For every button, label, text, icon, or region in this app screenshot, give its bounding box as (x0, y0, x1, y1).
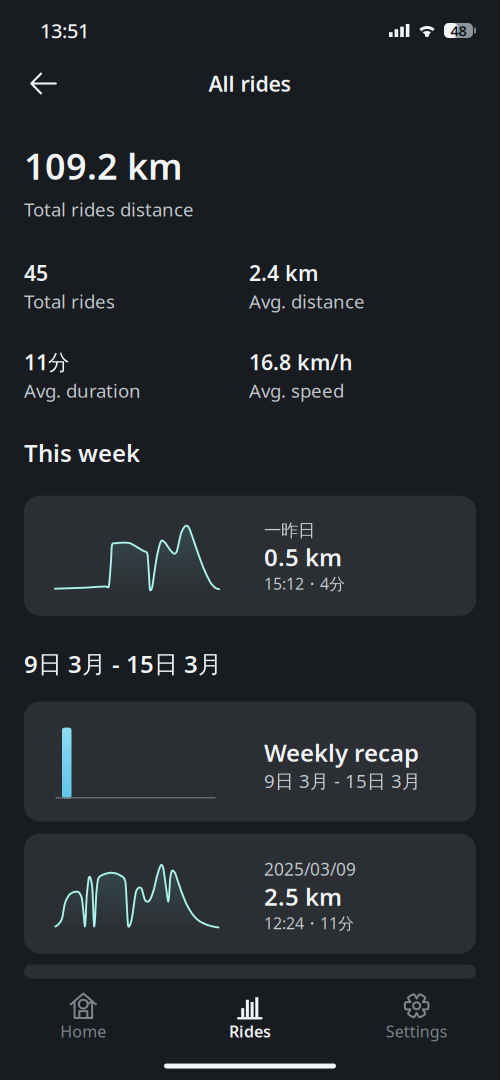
button[interactable]: Settings (333, 981, 500, 1052)
button[interactable]: 一昨日 (24, 496, 476, 616)
staticText: Avg. distance (249, 289, 365, 314)
staticText: 11分 (24, 348, 69, 376)
staticText: This week (24, 437, 140, 469)
button[interactable]: 2025/03/09 (24, 834, 476, 954)
staticText: Settings (386, 1021, 448, 1042)
staticText: 16.8 km/h (249, 348, 353, 376)
staticText: Home (60, 1021, 106, 1042)
staticText: 13:51 (40, 17, 89, 44)
staticText: 109.2 km (24, 142, 183, 190)
staticText: Total rides distance (24, 197, 194, 222)
staticText: Weekly recap (264, 737, 419, 768)
staticText: All rides (208, 69, 291, 98)
staticText: Rides (229, 1021, 271, 1042)
button[interactable]: Weekly recap (24, 702, 476, 822)
staticText: 一昨日 (264, 520, 315, 541)
staticText: 0.5 km (264, 541, 342, 573)
button[interactable]: Back (17, 61, 70, 106)
staticText: 9日 3月 - 15日 3月 (24, 648, 222, 680)
staticText: Avg. speed (249, 378, 344, 403)
button[interactable]: Home (0, 981, 167, 1052)
button[interactable]: Rides (167, 981, 333, 1052)
staticText: Total rides (24, 289, 115, 314)
staticText: 2.5 km (264, 881, 342, 912)
staticText: 2025/03/09 (264, 858, 356, 881)
staticText: 15:12・4分 (264, 573, 345, 594)
staticText: 9日 3月 - 15日 3月 (264, 768, 421, 793)
staticText: 2.4 km (249, 259, 318, 287)
staticText: 48 (450, 21, 466, 40)
staticText: Avg. duration (24, 378, 141, 403)
staticText: 45 (24, 259, 48, 287)
staticText: 12:24・11分 (264, 912, 354, 934)
